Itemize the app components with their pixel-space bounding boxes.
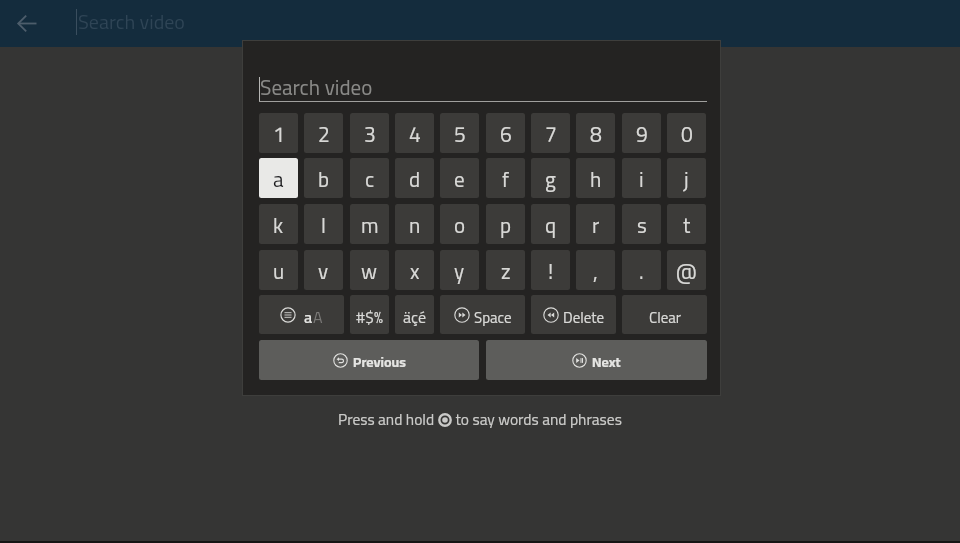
- button[interactable]: .: [622, 250, 661, 290]
- staticText: u: [273, 252, 285, 290]
- button[interactable]: ,: [576, 250, 615, 290]
- button[interactable]: 4: [395, 113, 434, 153]
- button[interactable]: s: [622, 204, 661, 244]
- button[interactable]: Delete: [531, 295, 616, 334]
- staticText: äçé: [403, 302, 426, 332]
- button[interactable]: t: [667, 204, 706, 244]
- staticText: a: [304, 302, 313, 332]
- staticText: w: [361, 252, 378, 290]
- staticText: Press and hold: [338, 405, 438, 434]
- staticText: 3: [364, 115, 376, 153]
- staticText: 0: [681, 115, 693, 153]
- button[interactable]: x: [395, 250, 434, 290]
- button[interactable]: m: [350, 204, 389, 244]
- staticText: 2: [318, 115, 330, 153]
- staticText: 7: [545, 115, 557, 153]
- staticText: n: [409, 206, 421, 244]
- button[interactable]: f: [486, 158, 525, 198]
- button[interactable]: Space: [440, 295, 525, 334]
- staticText: Delete: [563, 303, 605, 331]
- button[interactable]: d: [395, 158, 434, 198]
- button[interactable]: o: [440, 204, 479, 244]
- button[interactable]: k: [259, 204, 298, 244]
- button[interactable]: Next: [486, 340, 707, 380]
- button[interactable]: u: [259, 250, 298, 290]
- staticText: Search video: [260, 68, 373, 107]
- staticText: z: [501, 252, 511, 290]
- button[interactable]: 7: [531, 113, 570, 153]
- button[interactable]: 9: [622, 113, 661, 153]
- staticText: x: [410, 252, 420, 290]
- button[interactable]: q: [531, 204, 570, 244]
- button[interactable]: n: [395, 204, 434, 244]
- button[interactable]: c: [350, 158, 389, 198]
- staticText: Search video: [78, 3, 185, 40]
- staticText: d: [409, 160, 421, 198]
- button[interactable]: p: [486, 204, 525, 244]
- staticText: l: [321, 206, 326, 244]
- staticText: 5: [454, 115, 466, 153]
- staticText: b: [318, 160, 330, 198]
- button[interactable]: 1: [259, 113, 298, 153]
- staticText: v: [318, 252, 329, 290]
- staticText: e: [454, 160, 465, 198]
- staticText: 9: [636, 115, 648, 153]
- button[interactable]: 8: [576, 113, 615, 153]
- button[interactable]: a: [259, 158, 298, 198]
- button[interactable]: v: [304, 250, 343, 290]
- button[interactable]: 0: [667, 113, 706, 153]
- staticText: r: [592, 206, 600, 244]
- button[interactable]: e: [440, 158, 479, 198]
- staticText: m: [361, 206, 379, 244]
- staticText: i: [639, 160, 644, 198]
- staticText: c: [365, 160, 375, 198]
- staticText: 8: [590, 115, 602, 153]
- staticText: h: [590, 160, 602, 198]
- button[interactable]: @: [667, 250, 706, 290]
- staticText: s: [637, 206, 647, 244]
- staticText: @: [676, 252, 697, 290]
- button[interactable]: g: [531, 158, 570, 198]
- button[interactable]: Clear: [622, 295, 707, 334]
- staticText: to say words and phrases: [452, 405, 622, 434]
- button[interactable]: y: [440, 250, 479, 290]
- staticText: q: [545, 206, 557, 244]
- button[interactable]: Back: [6, 0, 47, 47]
- staticText: t: [683, 206, 691, 244]
- button[interactable]: j: [667, 158, 706, 198]
- staticText: y: [454, 252, 465, 290]
- button[interactable]: h: [576, 158, 615, 198]
- button[interactable]: r: [576, 204, 615, 244]
- button[interactable]: b: [304, 158, 343, 198]
- staticText: !: [548, 252, 554, 290]
- button[interactable]: i: [622, 158, 661, 198]
- button[interactable]: a: [259, 295, 344, 334]
- staticText: f: [502, 160, 509, 198]
- staticText: Space: [474, 303, 512, 331]
- staticText: 6: [500, 115, 512, 153]
- button[interactable]: w: [350, 250, 389, 290]
- button[interactable]: l: [304, 204, 343, 244]
- button[interactable]: z: [486, 250, 525, 290]
- staticText: ,: [593, 252, 598, 290]
- button[interactable]: 2: [304, 113, 343, 153]
- button[interactable]: Previous: [259, 340, 479, 380]
- staticText: Previous: [353, 349, 406, 375]
- staticText: #$%: [356, 302, 383, 332]
- button[interactable]: 6: [486, 113, 525, 153]
- staticText: p: [500, 206, 512, 244]
- button[interactable]: äçé: [395, 295, 434, 334]
- staticText: a: [273, 160, 284, 198]
- staticText: .: [639, 252, 644, 290]
- button[interactable]: !: [531, 250, 570, 290]
- staticText: g: [545, 160, 556, 198]
- button[interactable]: 3: [350, 113, 389, 153]
- staticText: 1: [273, 115, 285, 153]
- staticText: j: [684, 160, 689, 198]
- button[interactable]: 5: [440, 113, 479, 153]
- staticText: 4: [409, 115, 421, 153]
- button[interactable]: #$%: [350, 295, 389, 334]
- staticText: Next: [592, 349, 621, 375]
- staticText: k: [273, 206, 284, 244]
- staticText: A: [313, 302, 323, 332]
